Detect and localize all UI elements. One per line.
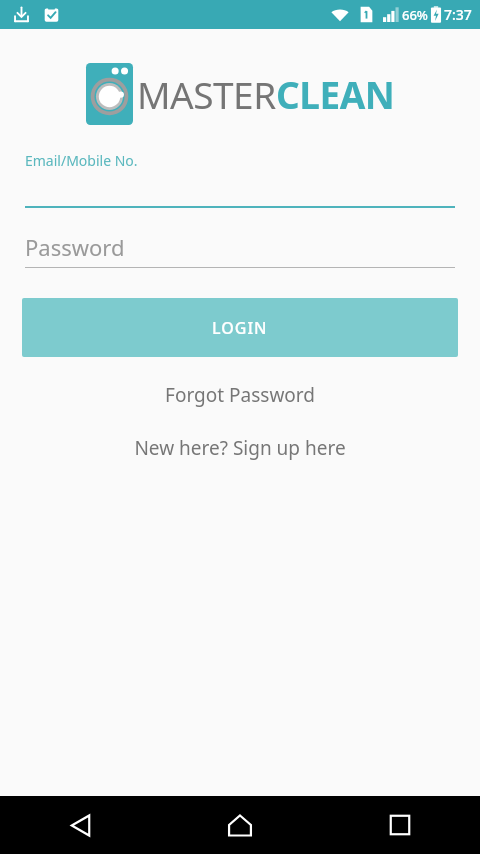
button[interactable]: Home [160, 796, 320, 854]
staticText: New here? Sign up here [134, 435, 346, 461]
button[interactable]: Recents [320, 796, 480, 854]
staticText: CLEAN [276, 69, 395, 119]
button[interactable]: LOGIN [22, 298, 458, 357]
staticText: MASTER [137, 69, 276, 119]
button[interactable]: New here? Sign up here [0, 435, 480, 461]
button[interactable]: Back [0, 796, 160, 854]
staticText: 7:37 [444, 5, 472, 24]
staticText: Email/Mobile No. [25, 151, 138, 170]
staticText: Forgot Password [165, 382, 315, 408]
staticText: 66% [402, 6, 428, 24]
button[interactable]: Forgot Password [0, 382, 480, 408]
staticText: LOGIN [212, 317, 268, 339]
staticText: Password [25, 232, 125, 262]
